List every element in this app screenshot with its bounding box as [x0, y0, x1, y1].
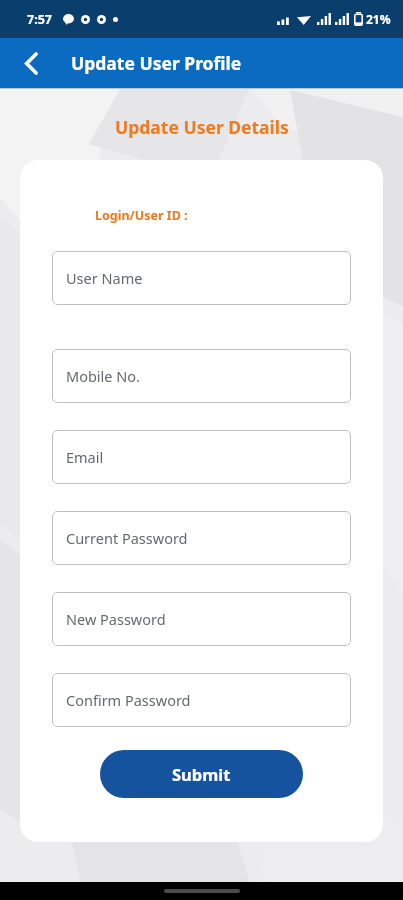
button[interactable]: Submit	[100, 750, 303, 798]
staticText: Submit	[172, 763, 231, 785]
staticText: 7:57	[27, 11, 52, 28]
staticText: User Name	[66, 268, 143, 288]
button[interactable]: Email	[52, 430, 351, 484]
button[interactable]: Confirm Password	[52, 673, 351, 727]
staticText: Mobile No.	[66, 366, 140, 386]
staticText: 21%	[366, 11, 391, 27]
staticText: Email	[66, 447, 104, 467]
staticText: Current Password	[66, 528, 188, 548]
staticText: Update User Details	[115, 115, 289, 139]
button[interactable]: Current Password	[52, 511, 351, 565]
staticText: Login/User ID :	[95, 207, 188, 224]
button[interactable]: User Name	[52, 251, 351, 305]
button[interactable]: Mobile No.	[52, 349, 351, 403]
button[interactable]: New Password	[52, 592, 351, 646]
button[interactable]: Back	[10, 42, 52, 84]
staticText: New Password	[66, 609, 166, 629]
staticText: Update User Profile	[71, 51, 242, 75]
staticText: Confirm Password	[66, 690, 191, 710]
